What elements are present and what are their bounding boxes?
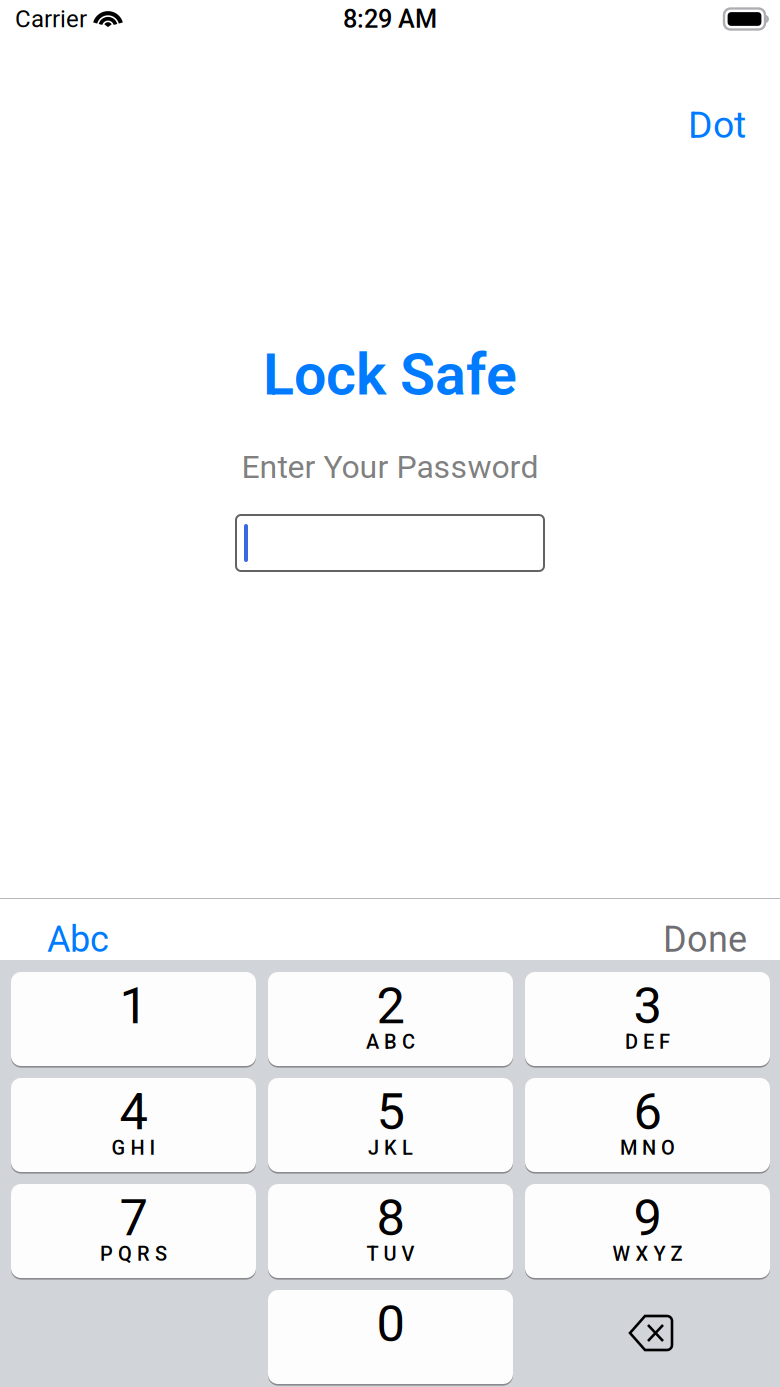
staticText: A B C bbox=[366, 1030, 415, 1054]
button[interactable]: 4 bbox=[11, 1078, 256, 1172]
staticText: 5 bbox=[376, 1082, 404, 1142]
staticText: Enter Your Password bbox=[241, 448, 538, 486]
staticText: 7 bbox=[119, 1188, 147, 1248]
staticText: 8 bbox=[376, 1188, 404, 1248]
staticText: 3 bbox=[633, 976, 661, 1036]
button[interactable]: Done bbox=[663, 897, 780, 961]
staticText: W X Y Z bbox=[612, 1242, 682, 1266]
staticText: P Q R S bbox=[100, 1242, 167, 1266]
staticText: Abc bbox=[47, 918, 109, 961]
staticText: 2 bbox=[376, 976, 404, 1036]
staticText: 9 bbox=[633, 1188, 661, 1248]
button[interactable]: 1 bbox=[11, 972, 256, 1066]
button[interactable]: 2 bbox=[268, 972, 513, 1066]
staticText: 8:29 AM bbox=[343, 4, 437, 34]
button[interactable]: 6 bbox=[525, 1078, 770, 1172]
button[interactable]: 3 bbox=[525, 972, 770, 1066]
button[interactable]: Delete bbox=[525, 1290, 770, 1384]
staticText: T U V bbox=[366, 1242, 414, 1266]
staticText: 4 bbox=[119, 1082, 147, 1142]
staticText: Done bbox=[663, 918, 747, 961]
button[interactable]: 5 bbox=[268, 1078, 513, 1172]
button[interactable]: 8 bbox=[268, 1184, 513, 1278]
staticText: Dot bbox=[688, 103, 746, 147]
staticText: 1 bbox=[119, 976, 147, 1036]
button[interactable]: Dot bbox=[688, 104, 780, 146]
staticText: 6 bbox=[633, 1082, 661, 1142]
button[interactable]: 0 bbox=[268, 1290, 513, 1384]
staticText: 0 bbox=[376, 1294, 404, 1354]
button[interactable]: Abc bbox=[0, 897, 109, 961]
button[interactable]: 9 bbox=[525, 1184, 770, 1278]
staticText: G H I bbox=[111, 1136, 155, 1160]
button[interactable]: 7 bbox=[11, 1184, 256, 1278]
staticText: J K L bbox=[368, 1136, 413, 1160]
staticText: D E F bbox=[625, 1030, 670, 1054]
staticText: Carrier bbox=[15, 5, 87, 33]
staticText: M N O bbox=[620, 1136, 675, 1160]
staticText: Lock Safe bbox=[263, 341, 517, 409]
